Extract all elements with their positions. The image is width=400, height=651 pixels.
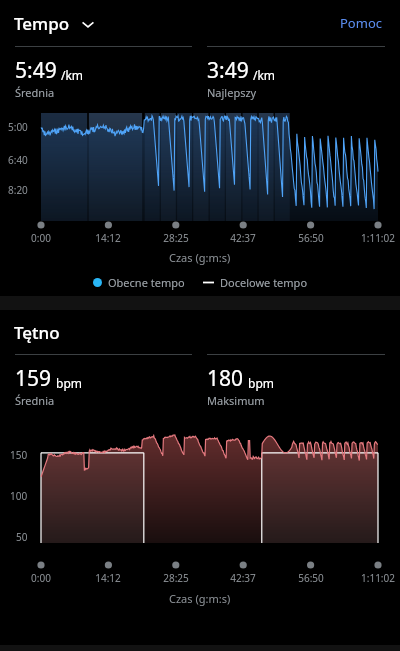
staticText: 56:50 [285, 571, 337, 585]
staticText: bpm [248, 375, 274, 391]
staticText: 1:11:02 [352, 571, 400, 585]
staticText: 159 [15, 364, 52, 393]
staticText: Średnia [15, 85, 55, 100]
staticText: 50 [16, 530, 28, 544]
button[interactable]: 180 [207, 354, 385, 408]
staticText: 5:49 [15, 56, 57, 85]
staticText: 180 [207, 364, 244, 393]
staticText: Czas (g:m:s) [169, 250, 231, 265]
staticText: 14:12 [82, 571, 134, 585]
staticText: 100 [10, 489, 28, 503]
staticText: 42:37 [217, 571, 269, 585]
button[interactable]: Pomoc [336, 10, 386, 36]
button[interactable]: Tętno [14, 321, 60, 344]
staticText: Czas (g:m:s) [169, 591, 231, 606]
staticText: Pomoc [340, 14, 382, 32]
other: Rozwiń [80, 16, 96, 32]
staticText: Najlepszy [207, 85, 257, 100]
staticText: 28:25 [150, 231, 202, 245]
staticText: /km [253, 67, 276, 83]
button[interactable]: Tempo [14, 12, 96, 35]
staticText: 1:11:02 [352, 231, 400, 245]
staticText: 56:50 [285, 231, 337, 245]
staticText: Maksimum [207, 393, 265, 408]
staticText: Tętno [14, 321, 60, 344]
staticText: Docelowe tempo [220, 275, 308, 290]
staticText: 42:37 [217, 231, 269, 245]
staticText: 28:25 [150, 571, 202, 585]
staticText: 0:00 [15, 231, 67, 245]
staticText: Tempo [14, 12, 70, 35]
staticText: 150 [10, 448, 28, 462]
staticText: 0:00 [15, 571, 67, 585]
button[interactable]: 3:49 [207, 46, 385, 100]
button[interactable]: 159 [15, 354, 192, 408]
staticText: /km [61, 67, 84, 83]
staticText: Średnia [15, 393, 55, 408]
staticText: Obecne tempo [108, 275, 185, 290]
staticText: 8:20 [8, 183, 28, 197]
staticText: 14:12 [82, 231, 134, 245]
staticText: 5:00 [8, 120, 28, 134]
staticText: 3:49 [207, 56, 249, 85]
button[interactable]: 5:49 [15, 46, 192, 100]
staticText: bpm [56, 375, 82, 391]
staticText: 6:40 [8, 153, 28, 167]
